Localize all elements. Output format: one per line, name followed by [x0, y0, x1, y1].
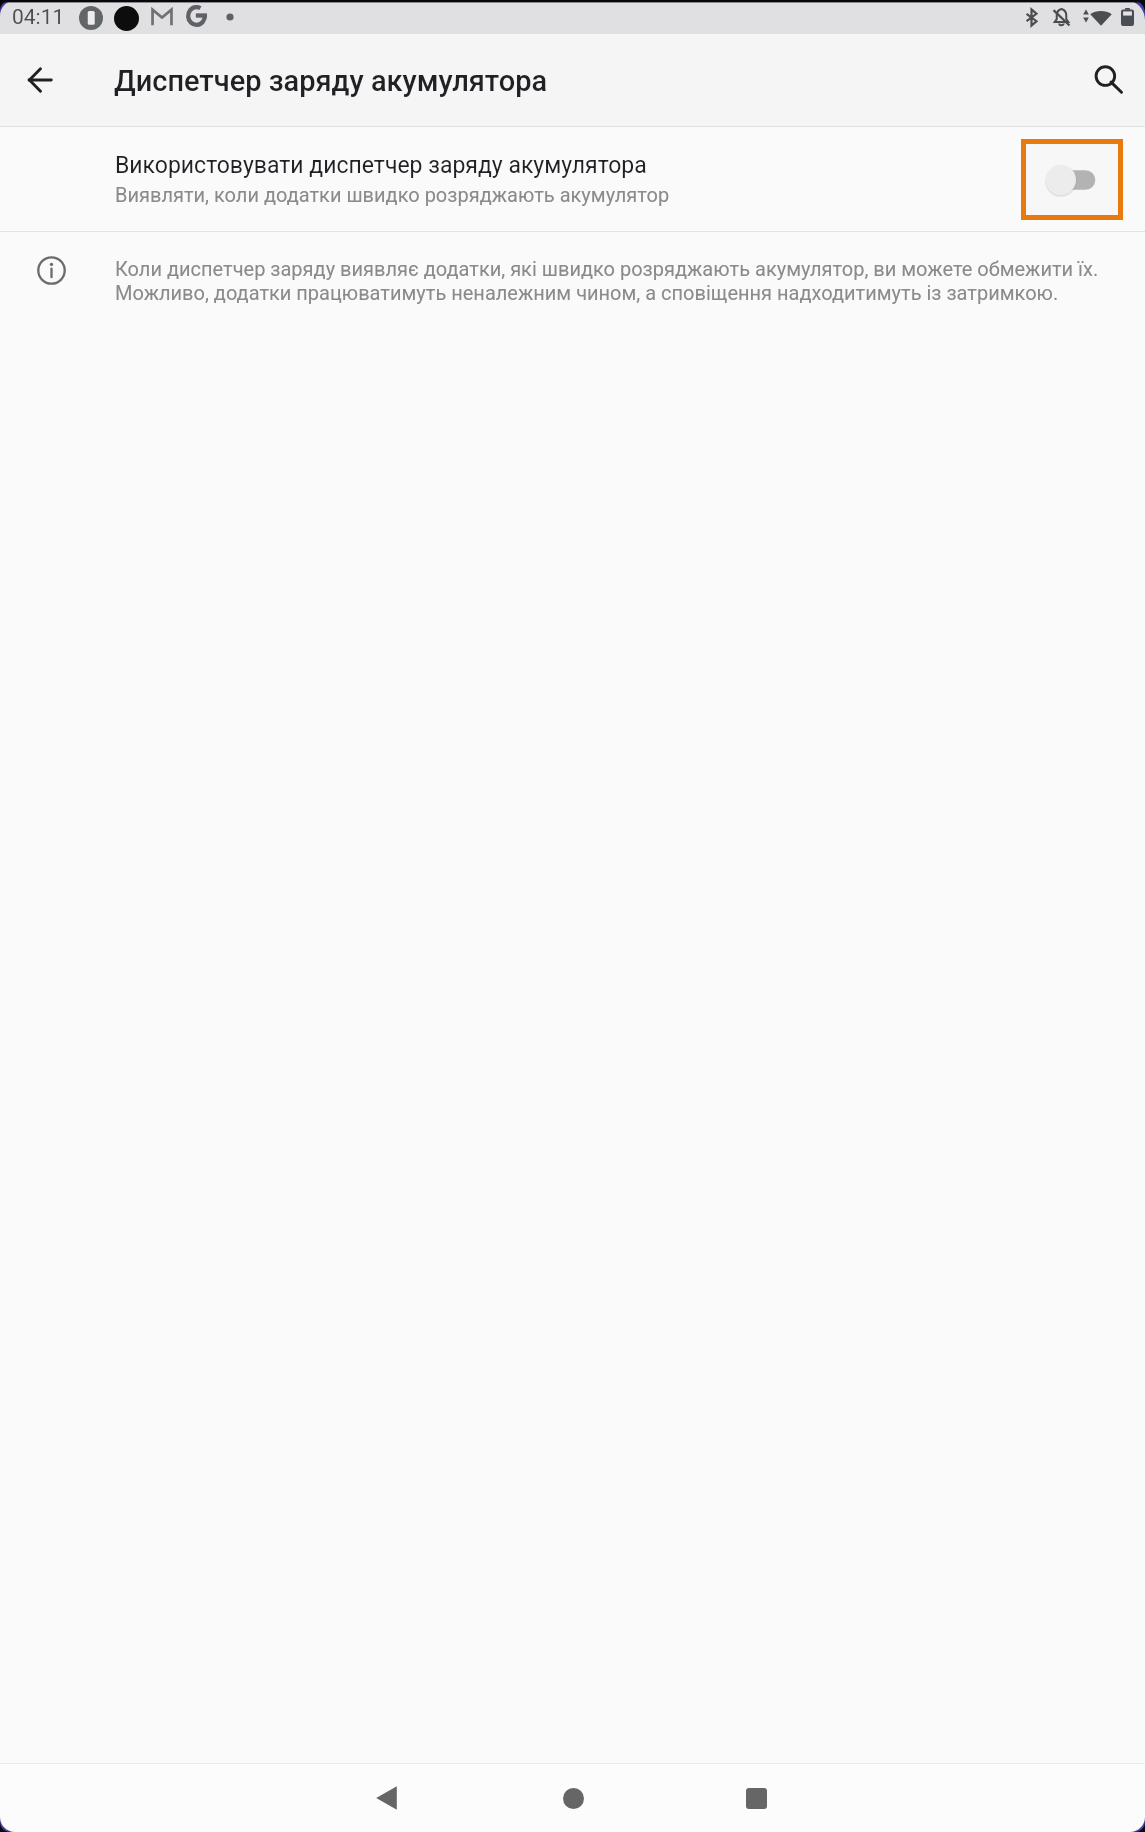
button[interactable]: Назад: [12, 52, 68, 108]
staticText: Коли диспетчер заряду виявляє додатки, я…: [115, 257, 1119, 305]
staticText: Виявляти, коли додатки швидко розряджают…: [115, 183, 670, 206]
button[interactable]: Останні додатки: [720, 1764, 792, 1832]
button[interactable]: Головний екран: [537, 1764, 609, 1832]
button[interactable]: Використовувати диспетчер заряду акумуля…: [0, 127, 1145, 231]
button[interactable]: Назад: [352, 1764, 424, 1832]
button[interactable]: Увімкнути диспетчер заряду: [1026, 144, 1118, 215]
staticText: Використовувати диспетчер заряду акумуля…: [115, 152, 647, 179]
staticText: 04:11: [12, 5, 65, 30]
staticText: Диспетчер заряду акумулятора: [114, 64, 548, 98]
button[interactable]: Пошук: [1081, 52, 1137, 108]
